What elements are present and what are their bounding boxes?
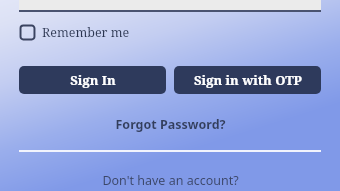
button[interactable] (19, 0, 321, 12)
button[interactable]: Sign in with OTP (174, 66, 321, 94)
staticText: Forgot Password? (115, 116, 226, 133)
staticText: Remember me (42, 24, 130, 41)
staticText: Sign In (70, 71, 116, 89)
button[interactable]: Forgot Password? (107, 113, 234, 136)
button[interactable]: Remember me (18, 22, 131, 43)
button[interactable]: Don't have an account? (94, 169, 247, 191)
button[interactable]: Sign In (19, 66, 166, 94)
staticText: Don't have an account? (102, 172, 239, 189)
staticText: Sign in with OTP (194, 71, 302, 89)
